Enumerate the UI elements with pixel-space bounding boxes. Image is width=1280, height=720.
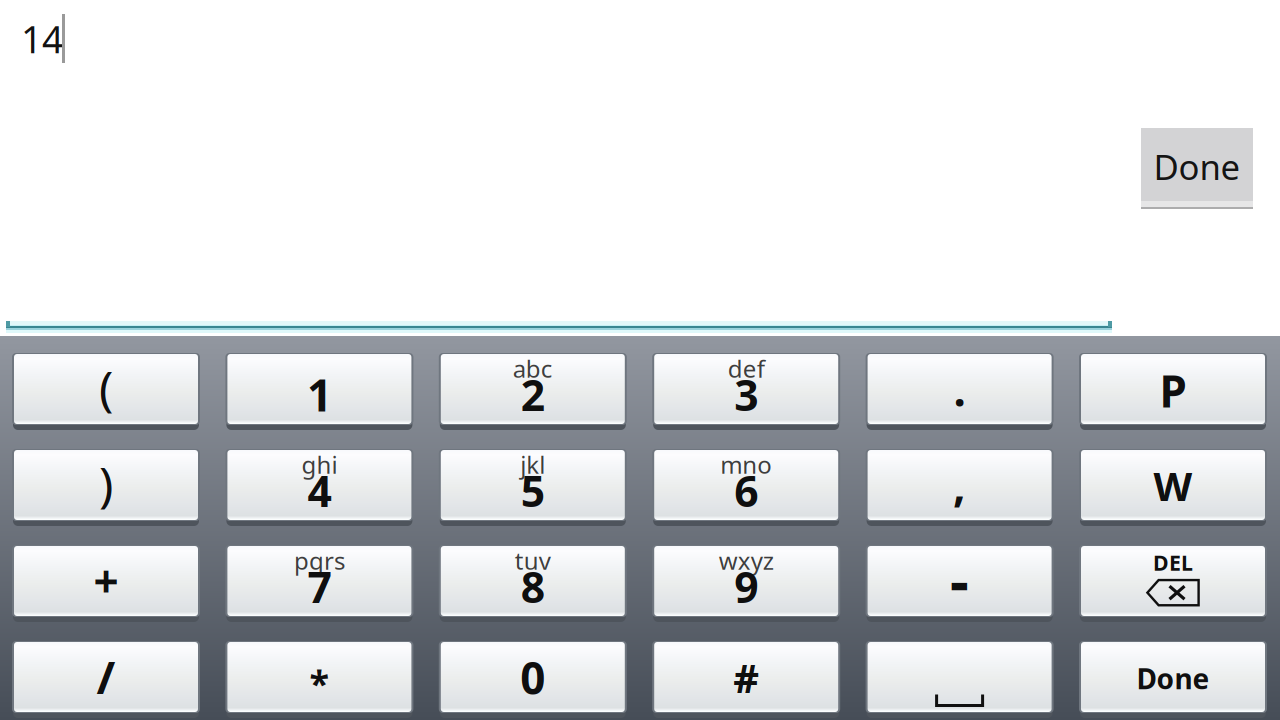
button[interactable]: Text field, 14 [6, 14, 1112, 321]
button[interactable]: Period [867, 353, 1053, 428]
button[interactable]: Asterisk [226, 641, 412, 716]
staticText: 2 [521, 366, 545, 423]
button[interactable]: 8 [440, 545, 626, 620]
button[interactable]: Done [1141, 128, 1253, 209]
staticText: 6 [734, 462, 758, 519]
staticText: 4 [307, 462, 331, 519]
button[interactable]: 0 [440, 641, 626, 716]
staticText: 3 [734, 366, 758, 423]
staticText: 9 [734, 558, 758, 615]
staticText: 8 [521, 558, 545, 615]
staticText: def [728, 353, 765, 384]
staticText: Done [1136, 660, 1209, 697]
staticText: tuv [515, 545, 551, 576]
staticText: , [953, 455, 966, 514]
staticText: 7 [307, 558, 331, 615]
button[interactable]: 1 [226, 353, 412, 428]
button[interactable]: 6 [653, 449, 839, 524]
button[interactable]: Left parenthesis [13, 353, 199, 428]
staticText: . [954, 360, 966, 419]
staticText: pqrs [294, 545, 345, 576]
staticText: ghi [301, 449, 337, 480]
staticText: ( [99, 356, 113, 419]
staticText: 1 [307, 365, 332, 424]
staticText: abc [513, 353, 553, 384]
button[interactable]: 5 [440, 449, 626, 524]
staticText: / [96, 646, 115, 707]
button[interactable]: Comma [867, 449, 1053, 524]
button[interactable]: 7 [226, 545, 412, 620]
button[interactable]: 4 [226, 449, 412, 524]
button[interactable]: Delete [1080, 545, 1266, 620]
staticText: wxyz [719, 545, 774, 576]
button[interactable]: Slash [13, 641, 199, 716]
button[interactable]: Number sign [653, 641, 839, 716]
button[interactable]: W [1080, 449, 1266, 524]
button[interactable]: Minus [867, 545, 1053, 620]
button[interactable]: Space [867, 641, 1053, 716]
staticText: jkl [520, 449, 545, 480]
staticText: DEL [1153, 548, 1193, 577]
staticText: mno [720, 449, 772, 480]
staticText: 0 [520, 648, 545, 707]
button[interactable]: 9 [653, 545, 839, 620]
staticText: ) [99, 452, 113, 515]
staticText: W [1153, 459, 1192, 512]
staticText: # [733, 651, 759, 704]
button[interactable]: 2 [440, 353, 626, 428]
button[interactable]: Right parenthesis [13, 449, 199, 524]
staticText: - [950, 540, 969, 618]
staticText: 5 [521, 462, 545, 519]
staticText: + [93, 551, 118, 610]
staticText: * [309, 659, 329, 706]
button[interactable]: 3 [653, 353, 839, 428]
button[interactable]: P [1080, 353, 1266, 428]
staticText: Done [1153, 143, 1240, 189]
button[interactable]: Done [1080, 641, 1266, 716]
button[interactable]: Plus [13, 545, 199, 620]
staticText: 14 [21, 14, 63, 64]
staticText: P [1159, 361, 1186, 420]
